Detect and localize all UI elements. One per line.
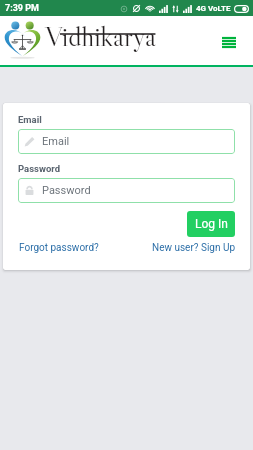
button[interactable]: Open navigation menu	[213, 26, 245, 58]
staticText: Password	[18, 163, 60, 174]
staticText: Email	[42, 135, 70, 148]
staticText: Password	[42, 184, 91, 197]
button[interactable]: Email	[18, 129, 235, 154]
staticText: Forgot password?	[19, 242, 99, 254]
staticText: Email	[18, 114, 42, 125]
staticText: 4G VoLTE	[196, 4, 231, 13]
button[interactable]: New user? Sign Up	[152, 242, 236, 254]
staticText: Vidhikarya	[45, 19, 156, 54]
staticText: Log In	[195, 217, 228, 231]
button[interactable]: Forgot password?	[19, 242, 99, 254]
staticText: 7:39 PM	[5, 3, 39, 14]
button[interactable]: Password	[18, 178, 235, 203]
staticText: New user? Sign Up	[152, 242, 236, 254]
button[interactable]: Log In	[187, 211, 235, 237]
